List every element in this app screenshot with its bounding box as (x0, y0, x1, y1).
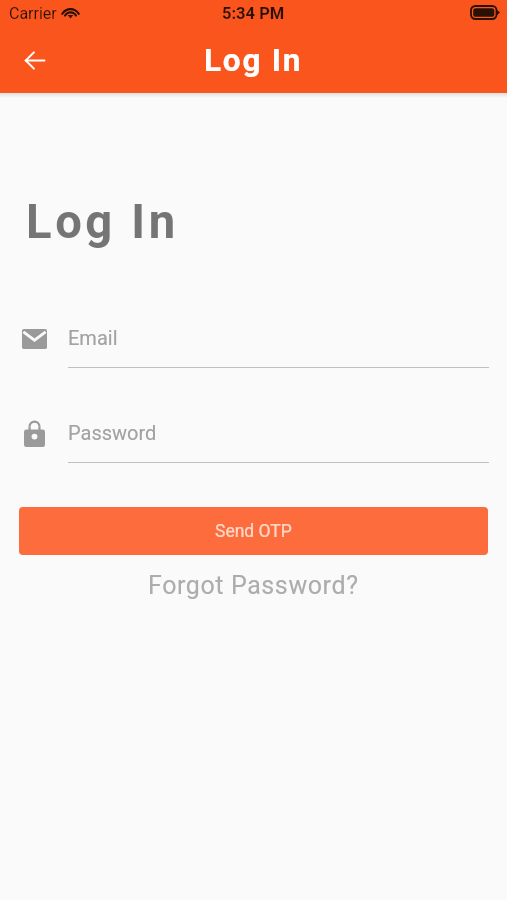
staticText: Email (68, 326, 118, 349)
staticText: Password (68, 421, 157, 444)
button[interactable]: Send OTP (19, 507, 488, 555)
staticText: Log In (26, 194, 179, 249)
staticText: Carrier (9, 4, 57, 23)
button[interactable]: Back (13, 38, 57, 82)
staticText: Log In (204, 42, 303, 79)
staticText: Send OTP (215, 521, 292, 542)
button[interactable]: Forgot Password? (140, 567, 367, 604)
staticText: 5:34 PM (222, 4, 285, 23)
staticText: Forgot Password? (148, 571, 359, 600)
